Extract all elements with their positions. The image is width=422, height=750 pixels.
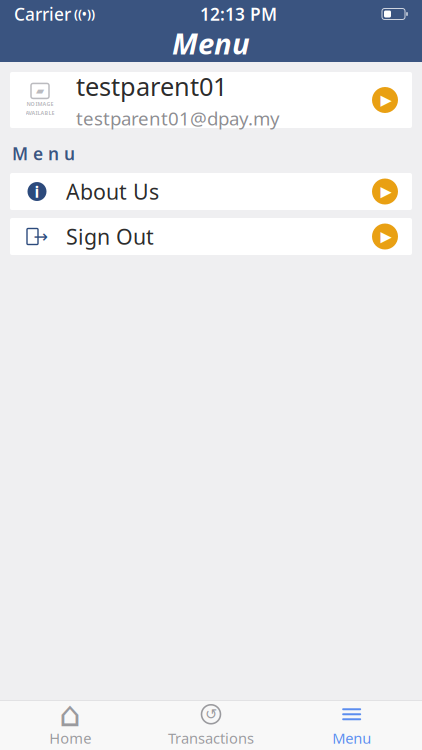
staticText: Transactions bbox=[168, 728, 254, 748]
staticText: testparent01@dpay.my bbox=[76, 106, 280, 131]
staticText: NO IMAGE bbox=[26, 100, 53, 107]
staticText: 12:13 PM bbox=[200, 2, 277, 25]
staticText: testparent01 bbox=[76, 69, 227, 103]
staticText: AVAILABLE bbox=[25, 109, 54, 117]
staticText: ▶ bbox=[380, 183, 391, 200]
button[interactable]: Menu bbox=[281, 697, 422, 750]
staticText: Menu bbox=[332, 728, 371, 748]
staticText: → bbox=[33, 227, 48, 246]
staticText: Carrier bbox=[14, 2, 71, 25]
staticText: ▶ bbox=[380, 228, 391, 245]
staticText: ▶ bbox=[380, 92, 391, 108]
staticText: i bbox=[34, 181, 39, 202]
staticText: Sign Out bbox=[66, 222, 154, 251]
button[interactable]: ↺ bbox=[141, 697, 281, 750]
staticText: M e n u bbox=[12, 142, 75, 165]
staticText: Home bbox=[49, 728, 91, 748]
button[interactable]: → bbox=[10, 218, 412, 255]
staticText: ▰ bbox=[36, 85, 44, 97]
staticText: ((•)) bbox=[71, 6, 95, 22]
staticText: ⌂ bbox=[59, 695, 81, 734]
staticText: ↺ bbox=[205, 706, 217, 722]
button[interactable]: ▰ bbox=[10, 72, 412, 128]
button[interactable]: ⌂ bbox=[0, 697, 141, 750]
button[interactable]: i bbox=[10, 173, 412, 210]
staticText: Menu bbox=[172, 23, 250, 62]
staticText: About Us bbox=[66, 177, 159, 206]
